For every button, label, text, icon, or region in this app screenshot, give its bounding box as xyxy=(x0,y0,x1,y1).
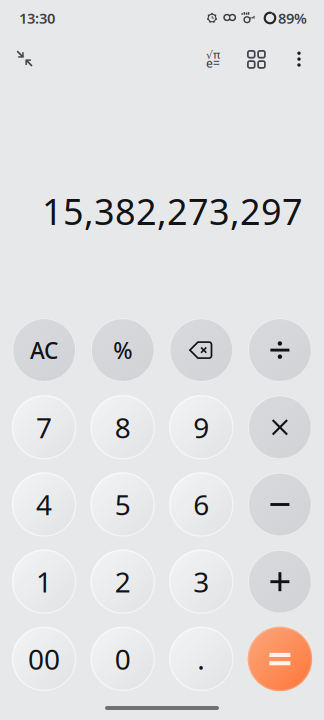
staticText: 4 xyxy=(36,486,52,523)
button[interactable]: 1 xyxy=(12,549,76,614)
staticText: 8 xyxy=(115,409,131,446)
button[interactable]: 7 xyxy=(12,395,76,460)
button[interactable]: % xyxy=(90,318,155,382)
staticText: % xyxy=(113,335,132,365)
staticText: 6 xyxy=(193,486,209,523)
button[interactable]: Delete xyxy=(169,318,234,382)
button[interactable]: . xyxy=(169,627,234,691)
staticText: 5 xyxy=(115,486,131,523)
button[interactable]: 5 xyxy=(90,472,155,537)
staticText: 00 xyxy=(28,640,60,677)
button[interactable]: Divide xyxy=(248,318,312,382)
button[interactable]: 4 xyxy=(12,472,76,537)
button[interactable]: 8 xyxy=(90,395,155,460)
button[interactable]: Add xyxy=(248,549,312,614)
button[interactable]: 6 xyxy=(169,472,234,537)
button[interactable]: 2 xyxy=(90,549,155,614)
staticText: . xyxy=(197,640,205,677)
button[interactable]: Converters xyxy=(239,42,273,76)
button[interactable]: Scientific xyxy=(196,42,230,76)
staticText: e= xyxy=(206,55,220,71)
button[interactable]: 3 xyxy=(169,549,234,614)
button[interactable]: Equals xyxy=(248,627,312,691)
button[interactable]: 9 xyxy=(169,395,234,460)
staticText: 1 xyxy=(36,563,52,600)
staticText: 9 xyxy=(193,409,209,446)
button[interactable]: Collapse xyxy=(8,42,42,76)
staticText: √π xyxy=(206,47,220,62)
button[interactable]: Subtract xyxy=(248,472,312,537)
button[interactable]: 0 xyxy=(90,627,155,691)
button[interactable]: Multiply xyxy=(248,395,312,460)
staticText: 2 xyxy=(115,563,131,600)
staticText: 13:30 xyxy=(19,8,55,28)
button[interactable]: 00 xyxy=(12,627,76,691)
button[interactable]: AC xyxy=(12,318,76,382)
staticText: 7 xyxy=(36,409,52,446)
staticText: 3 xyxy=(193,563,209,600)
button[interactable]: More options xyxy=(282,42,316,76)
staticText: AC xyxy=(30,335,58,365)
staticText: 89% xyxy=(278,8,307,28)
staticText: 0 xyxy=(115,640,131,677)
staticText: 15,382,273,297 xyxy=(42,187,303,235)
